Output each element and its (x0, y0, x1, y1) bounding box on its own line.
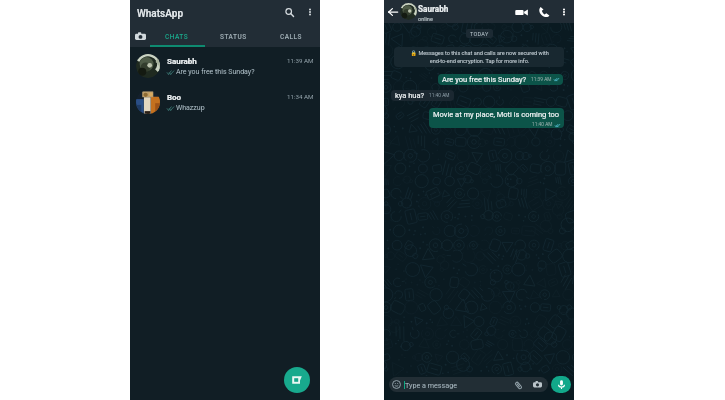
button[interactable]: More options (303, 5, 317, 19)
button[interactable]: Type a message (389, 377, 548, 392)
button[interactable]: New chat (284, 367, 310, 393)
staticText: 🔒 Messages to this chat and calls are no… (410, 50, 549, 64)
staticText: CALLS (280, 33, 303, 41)
staticText: Type a message (405, 381, 458, 389)
staticText: CHATS (165, 33, 189, 41)
staticText: Whazzup (176, 104, 205, 112)
button[interactable]: 🔒 Messages to this chat and calls are no… (394, 47, 564, 67)
button[interactable]: Camera (130, 23, 149, 47)
button[interactable]: Voice message (551, 376, 571, 393)
staticText: TODAY (470, 31, 489, 37)
button[interactable]: Attach (513, 380, 523, 390)
staticText: 11:34 AM (287, 93, 314, 100)
button[interactable]: Camera (532, 379, 543, 390)
staticText: Saurabh (167, 57, 197, 66)
button[interactable]: STATUS (205, 23, 262, 47)
button[interactable]: Voice call (537, 5, 550, 18)
staticText: 11:40 AM (532, 122, 553, 128)
button[interactable]: CHATS (149, 23, 205, 47)
staticText: WhatsApp (137, 8, 184, 20)
button[interactable]: Boo (130, 83, 320, 119)
staticText: STATUS (220, 33, 247, 41)
staticText: Movie at my place, Moti is coming too (433, 110, 560, 119)
staticText: 11:39 AM (287, 57, 314, 64)
button[interactable]: TODAY (466, 29, 493, 38)
button[interactable]: Movie at my place, Moti is coming too (429, 108, 564, 128)
button[interactable]: CALLS (262, 23, 320, 47)
button[interactable]: More options (558, 6, 569, 17)
button[interactable]: Search (282, 5, 296, 19)
staticText: kya hua? (395, 91, 425, 100)
staticText: Are you free this Sunday? (176, 68, 255, 76)
staticText: online (418, 16, 433, 22)
button[interactable]: Saurabh (130, 47, 320, 83)
staticText: 11:40 AM (429, 93, 450, 99)
staticText: 11:39 AM (531, 77, 552, 83)
button[interactable]: Video call (514, 5, 528, 19)
staticText: Boo (167, 93, 182, 102)
button[interactable]: kya hua? (391, 90, 454, 101)
button[interactable]: Are you free this Sunday? (438, 74, 563, 85)
staticText: Saurabh (418, 4, 449, 14)
staticText: Are you free this Sunday? (442, 75, 527, 84)
button[interactable]: Back (387, 6, 399, 18)
